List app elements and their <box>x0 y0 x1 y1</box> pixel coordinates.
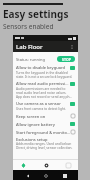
staticText: Keep screen on <box>16 114 71 119</box>
button[interactable]: Allow ignore battery <box>13 120 78 128</box>
staticText: Allow to disable keyguard <box>16 65 70 70</box>
button[interactable]: Keep screen on <box>13 112 78 120</box>
button[interactable]: Allow read audio permissions <box>13 80 78 87</box>
staticText: Allow read audio permissions <box>16 81 70 86</box>
button[interactable]: Use camera as a sensor <box>13 100 78 107</box>
button[interactable]: Toggle <box>70 122 75 126</box>
button[interactable]: Info <box>64 161 72 169</box>
staticText: Allow ignore battery <box>16 122 70 127</box>
button[interactable]: Sensors <box>19 161 27 169</box>
staticText: Uses front camera to detect light. <box>16 107 73 111</box>
button[interactable]: Home <box>41 171 50 180</box>
button[interactable]: STOP <box>57 56 75 62</box>
button[interactable]: Allow to disable keyguard <box>13 64 78 71</box>
staticText: Lab Floor <box>16 43 43 51</box>
staticText: STOP <box>62 57 71 62</box>
staticText: Start foreground & monitoring (speed 100… <box>16 130 71 135</box>
staticText: Use camera as a sensor <box>16 101 70 106</box>
staticText: Exclusions setup <box>16 137 78 142</box>
button[interactable]: Checkbox <box>71 130 75 134</box>
button[interactable]: Settings <box>42 161 50 169</box>
button[interactable]: Start foreground & monitoring (speed 100… <box>13 128 78 136</box>
button[interactable]: Recents <box>60 171 69 180</box>
button[interactable]: Toggle <box>70 102 75 106</box>
button[interactable]: Status: running <box>13 54 78 64</box>
staticText: Turns the keyguard in the disabled state… <box>16 71 73 79</box>
staticText: Adds media ranges. Used and below: Direc… <box>16 142 73 150</box>
button[interactable]: Back <box>23 171 32 180</box>
button[interactable]: Toggle <box>70 66 75 70</box>
button[interactable]: Checkbox <box>71 114 75 118</box>
staticText: Easy settings <box>3 7 69 21</box>
staticText: Sensors enabled <box>3 22 54 31</box>
button[interactable]: More options <box>68 43 76 51</box>
staticText: Status: running <box>16 57 57 62</box>
staticText: Audio permissions are needed to read aud… <box>16 87 73 99</box>
button[interactable]: Toggle <box>70 82 75 86</box>
